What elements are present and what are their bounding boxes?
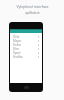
staticText: Vylepšené interface [16, 4, 49, 9]
staticText: Mapa [13, 39, 21, 43]
staticText: Hudba [13, 55, 23, 59]
staticText: Kniha [13, 43, 22, 47]
staticText: Účet [13, 35, 20, 39]
button[interactable]: Hudba [10, 55, 42, 59]
button[interactable]: Šport [10, 51, 42, 55]
button[interactable]: Mapa [10, 39, 42, 43]
staticText: Film [13, 47, 19, 51]
button[interactable]: Kniha [10, 43, 42, 47]
button[interactable]: Film [10, 47, 42, 51]
staticText: aplikácie [25, 10, 40, 15]
staticText: Šport [13, 51, 21, 55]
button[interactable]: Účet [10, 35, 42, 39]
